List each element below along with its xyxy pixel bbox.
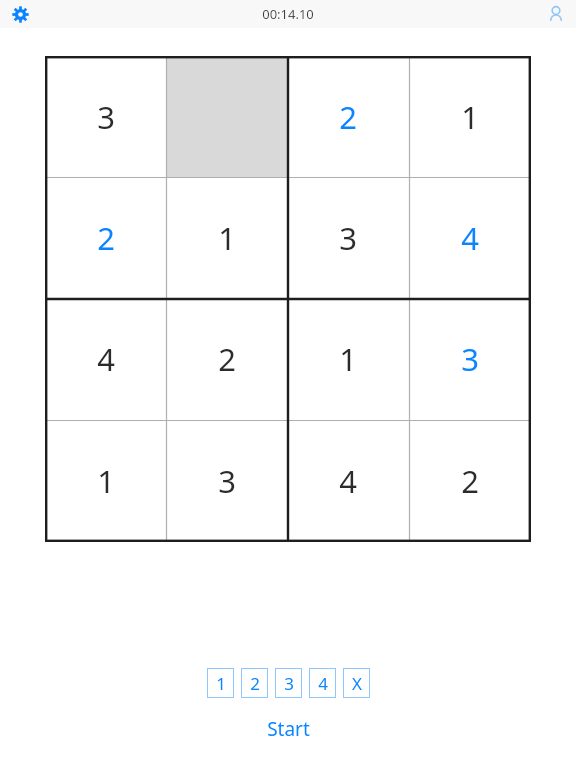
button[interactable]: 2 [45, 177, 166, 298]
staticText: Start [267, 716, 310, 742]
button[interactable] [166, 56, 287, 177]
button[interactable]: 3 [409, 298, 531, 420]
staticText: 1 [97, 460, 115, 502]
button[interactable]: Settings [8, 2, 32, 26]
button[interactable]: 1 [287, 298, 409, 420]
button[interactable]: 4 [45, 298, 166, 420]
staticText: 1 [339, 338, 357, 380]
button[interactable]: Start [267, 716, 310, 742]
staticText: 3 [218, 460, 236, 502]
staticText: 3 [284, 672, 294, 695]
button[interactable]: Account [544, 2, 568, 26]
button[interactable]: X [343, 668, 370, 698]
staticText: 4 [339, 460, 357, 502]
staticText: 4 [461, 217, 479, 259]
staticText: 1 [216, 672, 226, 695]
staticText: 3 [461, 338, 479, 380]
button[interactable]: 4 [409, 177, 531, 298]
button[interactable]: 3 [45, 56, 166, 177]
button[interactable]: 1 [207, 668, 234, 698]
button[interactable]: 1 [409, 56, 531, 177]
staticText: 2 [250, 672, 260, 695]
staticText: 3 [97, 96, 115, 138]
button[interactable]: 1 [166, 177, 287, 298]
staticText: 1 [461, 96, 479, 138]
button[interactable]: 4 [287, 420, 409, 542]
staticText: 2 [97, 217, 115, 259]
staticText: 3 [339, 217, 357, 259]
button[interactable]: 1 [45, 420, 166, 542]
staticText: 2 [339, 96, 357, 138]
button[interactable]: 3 [166, 420, 287, 542]
button[interactable]: 2 [166, 298, 287, 420]
staticText: X [352, 672, 362, 695]
button[interactable]: 2 [287, 56, 409, 177]
button[interactable]: 3 [287, 177, 409, 298]
button[interactable]: 2 [409, 420, 531, 542]
button[interactable]: 2 [241, 668, 268, 698]
staticText: 1 [218, 217, 236, 259]
staticText: 2 [461, 460, 479, 502]
staticText: 4 [97, 338, 115, 380]
staticText: 2 [218, 338, 236, 380]
staticText: 4 [318, 672, 328, 695]
staticText: 00:14.10 [262, 5, 314, 23]
button[interactable]: 3 [275, 668, 302, 698]
button[interactable]: 4 [309, 668, 336, 698]
